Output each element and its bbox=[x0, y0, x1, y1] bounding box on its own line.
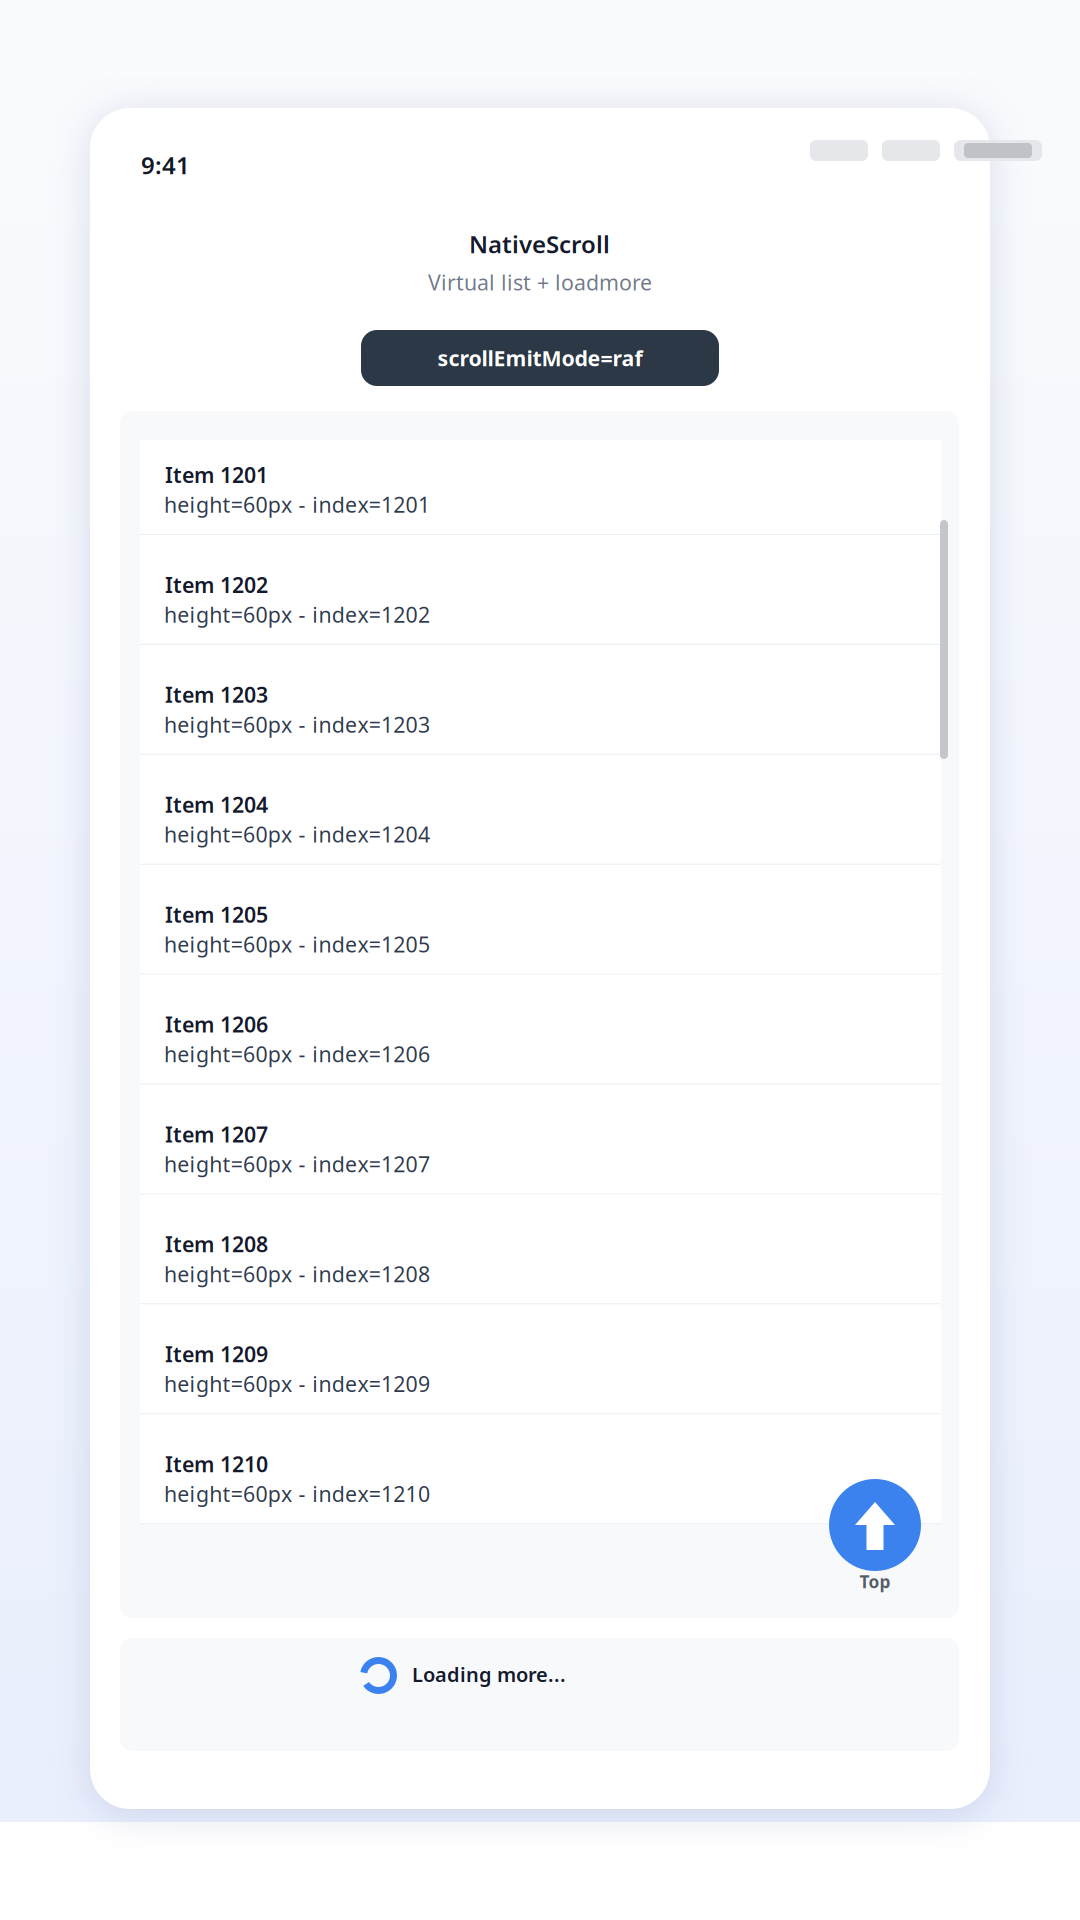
staticText: height=60px - index=1204 bbox=[164, 820, 430, 848]
button[interactable]: Item 1202 bbox=[140, 535, 941, 645]
staticText: height=60px - index=1207 bbox=[164, 1150, 430, 1178]
staticText: Loading more... bbox=[412, 1661, 566, 1688]
button[interactable]: Item 1207 bbox=[140, 1084, 941, 1194]
staticText: Item 1205 bbox=[165, 900, 268, 928]
staticText: Item 1209 bbox=[165, 1340, 268, 1368]
button[interactable]: Item 1208 bbox=[140, 1194, 941, 1304]
staticText: Item 1201 bbox=[165, 461, 268, 489]
staticText: height=60px - index=1205 bbox=[164, 930, 430, 958]
button[interactable]: Item 1204 bbox=[140, 755, 941, 865]
button[interactable]: Item 1209 bbox=[140, 1304, 941, 1414]
staticText: height=60px - index=1209 bbox=[164, 1370, 430, 1398]
staticText: Item 1207 bbox=[165, 1120, 268, 1148]
staticText: height=60px - index=1201 bbox=[164, 490, 430, 519]
staticText: Item 1208 bbox=[165, 1230, 268, 1258]
button[interactable]: Item 1210 bbox=[140, 1414, 941, 1524]
staticText: Item 1202 bbox=[165, 570, 268, 599]
staticText: height=60px - index=1206 bbox=[164, 1040, 430, 1068]
staticText: Item 1210 bbox=[165, 1450, 268, 1478]
staticText: height=60px - index=1203 bbox=[164, 710, 430, 738]
button[interactable]: Scroll to top bbox=[829, 1479, 921, 1593]
staticText: Item 1204 bbox=[165, 790, 268, 819]
staticText: Item 1206 bbox=[165, 1010, 268, 1038]
button[interactable]: Item 1201 bbox=[140, 440, 941, 535]
staticText: height=60px - index=1210 bbox=[164, 1479, 430, 1508]
button[interactable]: Item 1206 bbox=[140, 975, 941, 1084]
staticText: 9:41 bbox=[141, 149, 190, 181]
staticText: scrollEmitMode=raf bbox=[437, 344, 642, 372]
staticText: height=60px - index=1202 bbox=[164, 600, 430, 629]
staticText: Virtual list + loadmore bbox=[428, 268, 652, 296]
staticText: NativeScroll bbox=[469, 228, 610, 260]
button[interactable]: Item 1205 bbox=[140, 865, 941, 975]
button[interactable]: Item 1203 bbox=[140, 645, 941, 755]
button[interactable]: scrollEmitMode=raf bbox=[361, 330, 719, 386]
staticText: height=60px - index=1208 bbox=[164, 1260, 430, 1288]
staticText: Top bbox=[859, 1570, 890, 1593]
staticText: Item 1203 bbox=[165, 680, 268, 709]
